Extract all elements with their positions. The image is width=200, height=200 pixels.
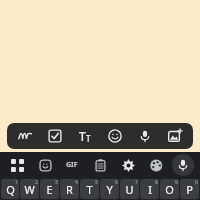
staticText: U [125,182,134,197]
button[interactable]: I [140,179,159,199]
staticText: E [46,182,53,197]
button[interactable]: Emoji [103,124,127,148]
staticText: 7 [135,179,138,186]
button[interactable]: Checklist [43,124,67,148]
staticText: P [186,182,193,197]
button[interactable]: Y [100,179,119,199]
button[interactable]: Settings [117,154,139,176]
button[interactable]: Clipboard [89,154,111,176]
button[interactable]: U [120,179,139,199]
button[interactable]: R [60,179,79,199]
button[interactable]: Q [1,179,19,199]
button[interactable]: Insert image [163,124,187,148]
button[interactable]: E [40,179,59,199]
staticText: 9 [175,179,178,186]
staticText: 8 [155,179,158,186]
staticText: 1 [15,179,18,186]
button[interactable]: W [20,179,39,199]
button[interactable]: P [180,179,199,199]
button[interactable]: GIF [61,154,83,176]
staticText: 4 [75,179,78,186]
button[interactable]: Voice typing [172,154,194,176]
button[interactable]: Handwriting [13,124,37,148]
staticText: 2 [35,179,38,186]
button[interactable]: Apps [6,154,28,176]
staticText: W [24,182,35,197]
button[interactable]: Voice input [133,124,157,148]
button[interactable]: T [80,179,99,199]
staticText: I [148,182,152,197]
button[interactable]: Themes [145,154,167,176]
staticText: T [86,182,93,197]
staticText: 3 [55,179,58,186]
staticText: Y [106,182,113,197]
button[interactable]: O [160,179,179,199]
staticText: T [79,128,86,144]
staticText: R [66,182,73,197]
staticText: 5 [95,179,98,186]
staticText: 6 [115,179,118,186]
button[interactable]: Stickers [34,154,56,176]
staticText: 0 [195,179,198,186]
staticText: Q [6,182,15,197]
staticText: T [86,133,91,144]
staticText: O [165,182,174,197]
staticText: GIF [66,160,78,170]
button[interactable]: Text formatting [73,124,97,148]
